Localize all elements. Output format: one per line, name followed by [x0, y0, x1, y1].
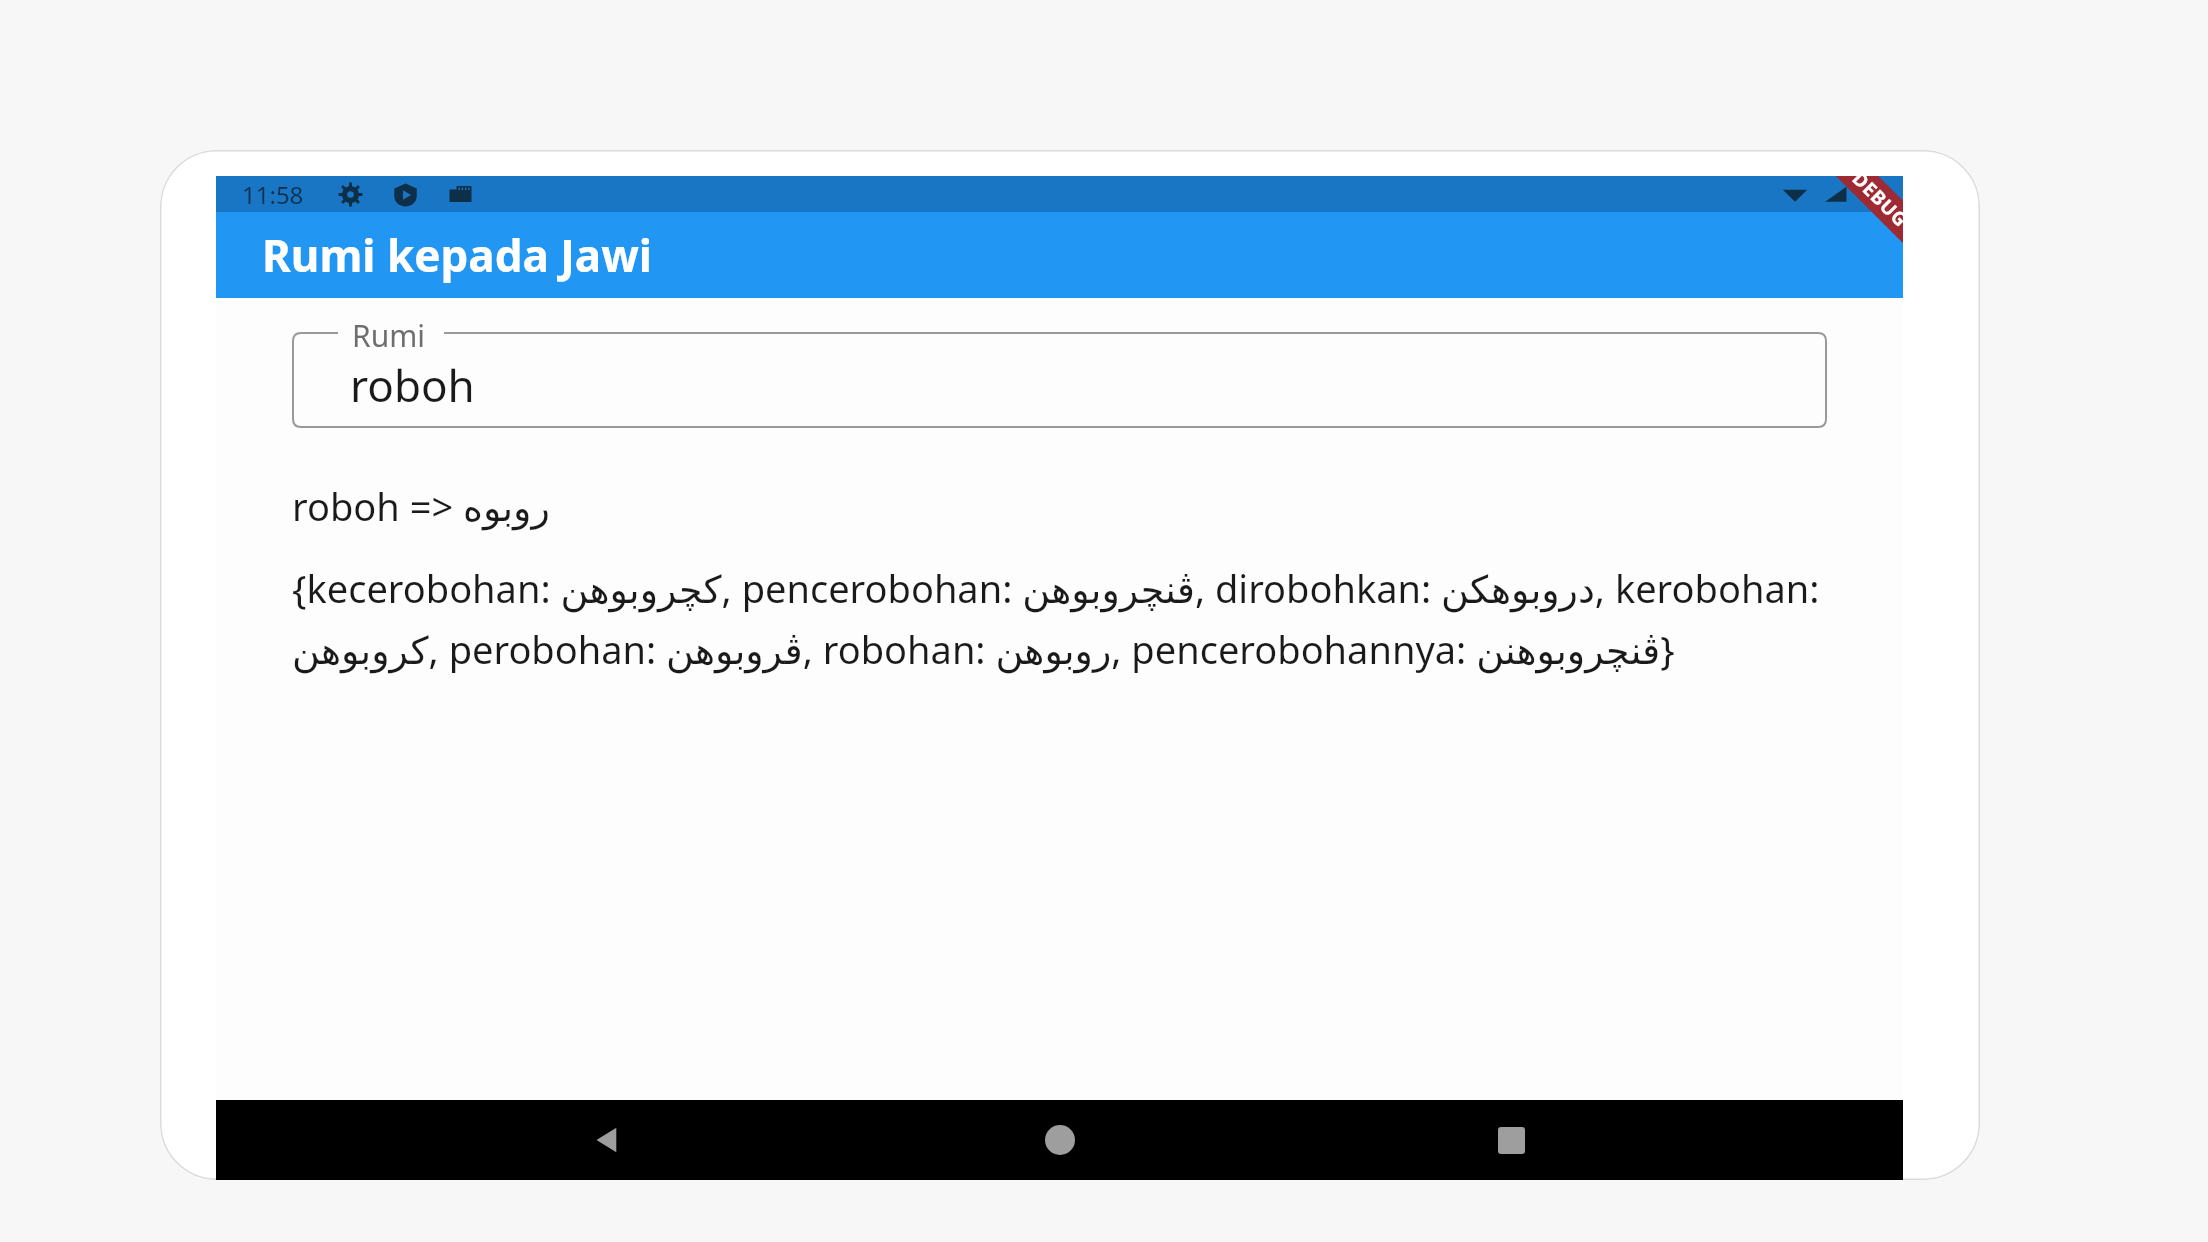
staticText: Rumi kepada Jawi — [262, 225, 653, 285]
button[interactable]: Home — [1000, 1100, 1120, 1180]
button[interactable]: Back — [548, 1100, 668, 1180]
staticText: {kecerobohan: كچروبوهن, pencerobohan: ڤن… — [292, 562, 1827, 675]
staticText: 11:58 — [242, 178, 304, 211]
staticText: Rumi — [352, 315, 425, 356]
button[interactable]: Recent apps — [1451, 1100, 1571, 1180]
staticText: roboh — [350, 355, 475, 415]
button[interactable]: Rumi — [292, 332, 1827, 428]
staticText: roboh => روبوه — [292, 480, 550, 532]
button[interactable]: Rumi kepada Jawi — [216, 212, 1903, 298]
staticText: DEBUG — [1847, 176, 1903, 233]
